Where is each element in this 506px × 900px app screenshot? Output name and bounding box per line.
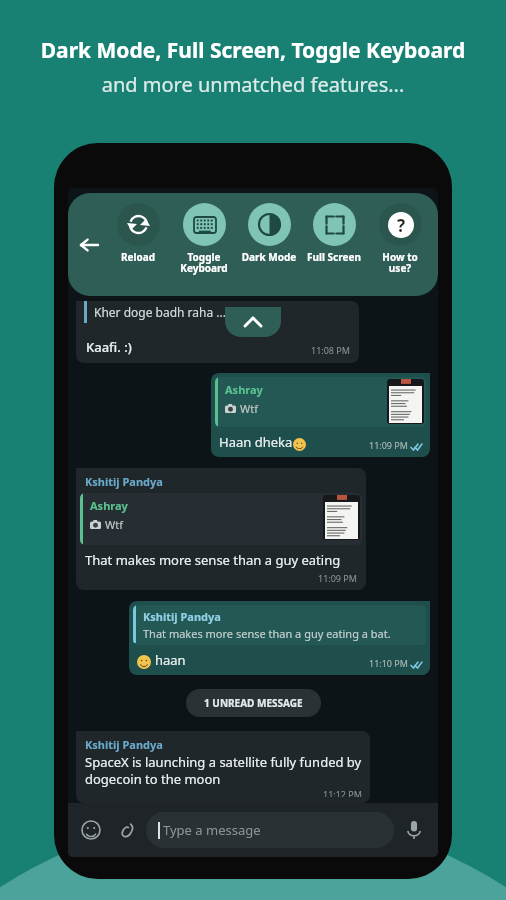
staticText: Type a message	[163, 821, 261, 839]
staticText: Reload	[107, 250, 169, 264]
staticText: haan	[155, 651, 186, 669]
button[interactable]: Dark Mode	[238, 203, 300, 264]
staticText: and more unmatched features...	[0, 71, 506, 98]
button[interactable]: Type a message	[146, 812, 394, 848]
staticText: Ashray	[225, 382, 263, 397]
button[interactable]: Full Screen	[303, 203, 365, 264]
button[interactable]: Kher doge badh raha ...	[76, 301, 359, 363]
staticText: 11:09 PM	[318, 572, 357, 584]
staticText: Dark Mode, Full Screen, Toggle Keyboard	[6, 36, 500, 65]
staticText: That makes more sense than a guy eating …	[143, 626, 391, 641]
staticText: Kher doge badh raha ...	[94, 304, 226, 320]
button[interactable]: Collapse toolbar	[225, 307, 281, 337]
staticText: 11:10 PM	[369, 657, 408, 669]
staticText: 11:08 PM	[311, 344, 350, 356]
staticText: ?	[397, 214, 406, 237]
staticText: SpaceX is launching a satellite fully fu…	[85, 753, 362, 788]
staticText: That makes more sense than a guy eating	[85, 551, 341, 569]
staticText: How to use?	[369, 250, 431, 275]
staticText: Kshitij Pandya	[143, 609, 221, 624]
staticText: Wtf	[105, 517, 123, 532]
staticText: Full Screen	[303, 250, 365, 264]
staticText: 11:12 PM	[323, 788, 362, 797]
button[interactable]: Kshitij Pandya	[129, 601, 430, 675]
staticText: 1 UNREAD MESSAGE	[204, 696, 303, 710]
button[interactable]: Emoji	[76, 815, 106, 845]
staticText: Kshitij Pandya	[85, 737, 163, 752]
button[interactable]: Back	[72, 228, 106, 262]
button[interactable]: ?	[369, 203, 431, 275]
staticText: Dark Mode	[238, 250, 300, 264]
staticText: Kshitij Pandya	[85, 474, 163, 489]
button[interactable]: Voice message	[398, 814, 430, 846]
button[interactable]: Kshitij Pandya	[76, 731, 370, 803]
button[interactable]: Kshitij Pandya	[76, 468, 366, 590]
button[interactable]: Toggle Keyboard	[173, 203, 235, 275]
staticText: Kaafi. :)	[86, 338, 132, 356]
staticText: 11:09 PM	[369, 439, 408, 451]
staticText: Haan dheka	[219, 433, 293, 451]
staticText: Ashray	[90, 498, 128, 513]
staticText: Wtf	[240, 401, 258, 416]
staticText: Toggle Keyboard	[173, 250, 235, 275]
button[interactable]: Ashray	[211, 373, 430, 457]
button[interactable]: 1 UNREAD MESSAGE	[186, 689, 321, 717]
button[interactable]: Attach	[111, 815, 141, 845]
button[interactable]: Reload	[107, 203, 169, 264]
